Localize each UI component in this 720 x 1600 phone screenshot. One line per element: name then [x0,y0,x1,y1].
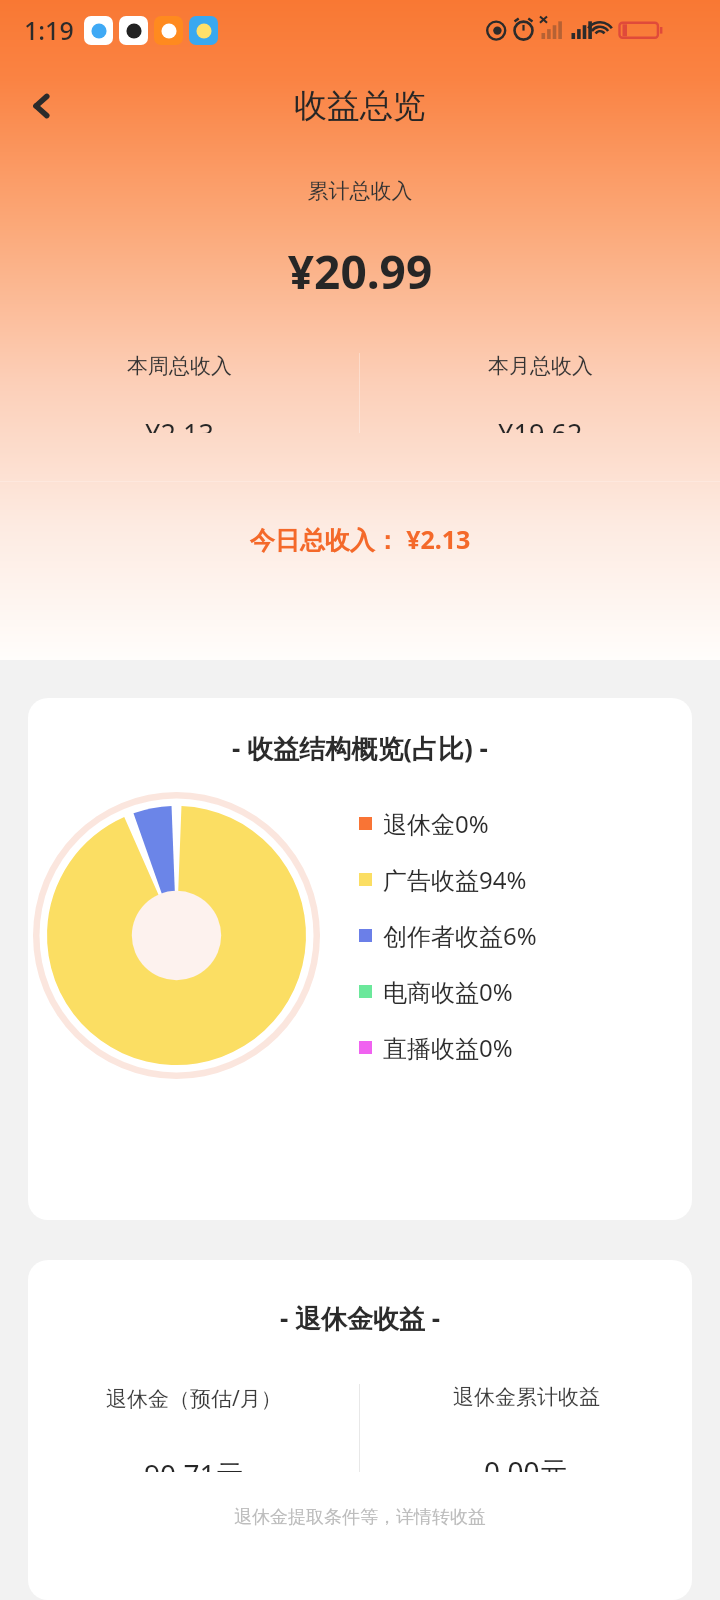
staticText: 累计总收入 [0,178,720,204]
staticText: 创作者收益6% [383,919,537,952]
staticText: ¥2.13 [145,415,215,433]
staticText: 退休金0% [383,807,489,840]
staticText: 0.00元 [484,1452,568,1472]
button[interactable]: 电商收益0% [359,975,513,1008]
staticText: 本周总收入 [127,353,232,379]
staticText: 直播收益0% [383,1031,513,1064]
staticText: 收益总览 [294,85,426,127]
staticText: - 收益结构概览(占比) - [28,730,692,766]
staticText: ¥19.62 [498,415,583,433]
button[interactable]: - 退休金收益 - [28,1260,692,1600]
staticText: 电商收益0% [383,975,513,1008]
staticText: 退休金提取条件等，详情转收益 [28,1506,692,1529]
button[interactable]: 创作者收益6% [359,919,537,952]
staticText: 退休金累计收益 [453,1384,600,1410]
button[interactable]: Back [14,78,70,134]
staticText: 1:19 [24,13,74,47]
staticText: - 退休金收益 - [28,1300,692,1336]
staticText: 退休金（预估/月） [106,1384,282,1413]
staticText: 90.71元 [144,1455,244,1472]
staticText: 本月总收入 [488,353,593,379]
staticText: 广告收益94% [383,863,527,896]
button[interactable]: 广告收益94% [359,863,527,896]
button[interactable]: - 收益结构概览(占比) - [28,698,692,1220]
staticText: ¥20.99 [0,240,720,303]
button[interactable]: 直播收益0% [359,1031,513,1064]
button[interactable]: 退休金0% [359,807,489,840]
staticText: 今日总收入： ¥2.13 [0,522,720,556]
